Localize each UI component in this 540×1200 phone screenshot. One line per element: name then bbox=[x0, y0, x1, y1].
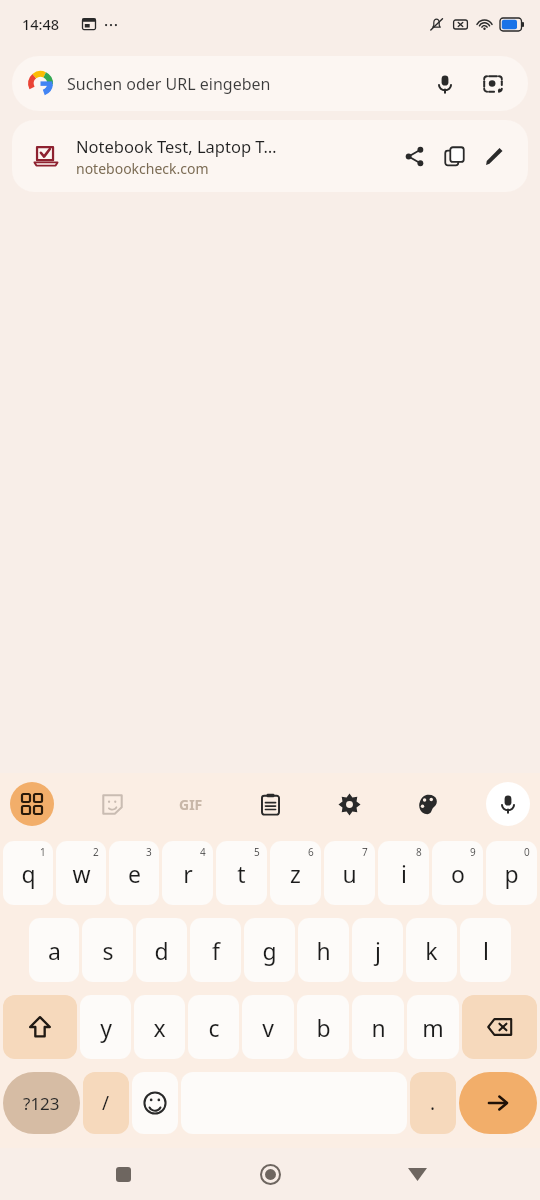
button[interactable]: Voice input bbox=[486, 782, 530, 826]
button[interactable]: f bbox=[190, 918, 241, 982]
staticText: 6 bbox=[308, 845, 314, 859]
button[interactable]: Google Lens bbox=[474, 65, 512, 103]
button[interactable]: Themes bbox=[407, 783, 449, 825]
button[interactable]: u bbox=[324, 841, 375, 905]
button[interactable]: t bbox=[216, 841, 267, 905]
button[interactable]: i bbox=[378, 841, 429, 905]
button[interactable]: p bbox=[486, 841, 537, 905]
staticText: w bbox=[72, 858, 91, 889]
staticText: p bbox=[504, 858, 519, 889]
staticText: 14:48 bbox=[22, 14, 60, 34]
staticText: / bbox=[102, 1090, 110, 1116]
button[interactable]: Recent apps bbox=[99, 1150, 147, 1198]
button[interactable]: Enter bbox=[459, 1072, 537, 1134]
button[interactable]: l bbox=[460, 918, 511, 982]
staticText: j bbox=[375, 935, 381, 966]
staticText: n bbox=[371, 1012, 386, 1043]
staticText: z bbox=[290, 858, 301, 889]
button[interactable]: z bbox=[270, 841, 321, 905]
staticText: i bbox=[401, 858, 407, 889]
button[interactable]: Backspace bbox=[462, 995, 537, 1059]
staticText: d bbox=[154, 935, 169, 966]
button[interactable]: Share bbox=[394, 136, 434, 176]
button[interactable]: GIF bbox=[170, 783, 212, 825]
staticText: r bbox=[183, 858, 193, 889]
staticText: k bbox=[425, 935, 438, 966]
button[interactable]: n bbox=[352, 995, 404, 1059]
staticText: notebookcheck.com bbox=[76, 159, 209, 178]
staticText: 3 bbox=[146, 845, 152, 859]
button[interactable]: g bbox=[244, 918, 295, 982]
button[interactable]: b bbox=[297, 995, 349, 1059]
button[interactable]: h bbox=[298, 918, 349, 982]
button[interactable]: e bbox=[109, 841, 159, 905]
button[interactable]: Emoji bbox=[132, 1072, 178, 1134]
staticText: q bbox=[21, 858, 36, 889]
button[interactable]: All apps bbox=[10, 782, 54, 826]
staticText: x bbox=[153, 1012, 166, 1043]
staticText: ?123 bbox=[23, 1092, 60, 1115]
staticText: c bbox=[208, 1012, 220, 1043]
button[interactable]: c bbox=[188, 995, 239, 1059]
staticText: . bbox=[430, 1090, 436, 1116]
button[interactable]: . bbox=[410, 1072, 456, 1134]
button[interactable]: Settings bbox=[328, 783, 370, 825]
button[interactable]: m bbox=[407, 995, 459, 1059]
staticText: 7 bbox=[362, 845, 368, 859]
staticText: 2 bbox=[93, 845, 99, 859]
button[interactable]: Voice search bbox=[426, 65, 464, 103]
button[interactable]: v bbox=[242, 995, 294, 1059]
button[interactable]: y bbox=[80, 995, 131, 1059]
button[interactable]: Edit bbox=[474, 136, 514, 176]
button[interactable]: Stickers bbox=[91, 783, 133, 825]
staticText: l bbox=[483, 935, 489, 966]
button[interactable]: s bbox=[82, 918, 133, 982]
staticText: 0 bbox=[524, 845, 530, 859]
button[interactable]: x bbox=[134, 995, 185, 1059]
staticText: 9 bbox=[470, 845, 476, 859]
button[interactable]: / bbox=[83, 1072, 129, 1134]
staticText: h bbox=[316, 935, 331, 966]
staticText: u bbox=[342, 858, 357, 889]
staticText: 8 bbox=[416, 845, 422, 859]
button[interactable]: a bbox=[29, 918, 79, 982]
button[interactable]: Shift bbox=[3, 995, 77, 1059]
staticText: m bbox=[422, 1012, 444, 1043]
staticText: y bbox=[100, 1012, 112, 1043]
staticText: a bbox=[48, 935, 61, 966]
staticText: g bbox=[262, 935, 277, 966]
button[interactable]: Suchen oder URL eingeben bbox=[12, 56, 528, 111]
staticText: s bbox=[102, 935, 114, 966]
button[interactable]: Notebook Test, Laptop T… bbox=[12, 120, 528, 192]
staticText: f bbox=[212, 935, 220, 966]
button[interactable]: o bbox=[432, 841, 483, 905]
staticText: o bbox=[451, 858, 465, 889]
button[interactable]: Copy link bbox=[434, 136, 474, 176]
staticText: v bbox=[262, 1012, 274, 1043]
button[interactable]: q bbox=[3, 841, 53, 905]
staticText: 5 bbox=[254, 845, 260, 859]
button[interactable]: Back bbox=[393, 1150, 441, 1198]
staticText: 1 bbox=[40, 845, 46, 859]
staticText: Suchen oder URL eingeben bbox=[67, 73, 426, 95]
button[interactable]: Home bbox=[246, 1150, 294, 1198]
staticText: Notebook Test, Laptop T… bbox=[76, 135, 277, 157]
staticText: b bbox=[316, 1012, 331, 1043]
button[interactable]: d bbox=[136, 918, 187, 982]
button[interactable]: Clipboard bbox=[249, 783, 291, 825]
staticText: GIF bbox=[179, 795, 203, 814]
button[interactable]: r bbox=[162, 841, 213, 905]
staticText: t bbox=[237, 858, 246, 889]
staticText: 4 bbox=[200, 845, 206, 859]
staticText: e bbox=[128, 858, 141, 889]
button[interactable]: w bbox=[56, 841, 106, 905]
button[interactable]: ?123 bbox=[3, 1072, 80, 1134]
button[interactable]: k bbox=[406, 918, 457, 982]
button[interactable]: j bbox=[352, 918, 403, 982]
